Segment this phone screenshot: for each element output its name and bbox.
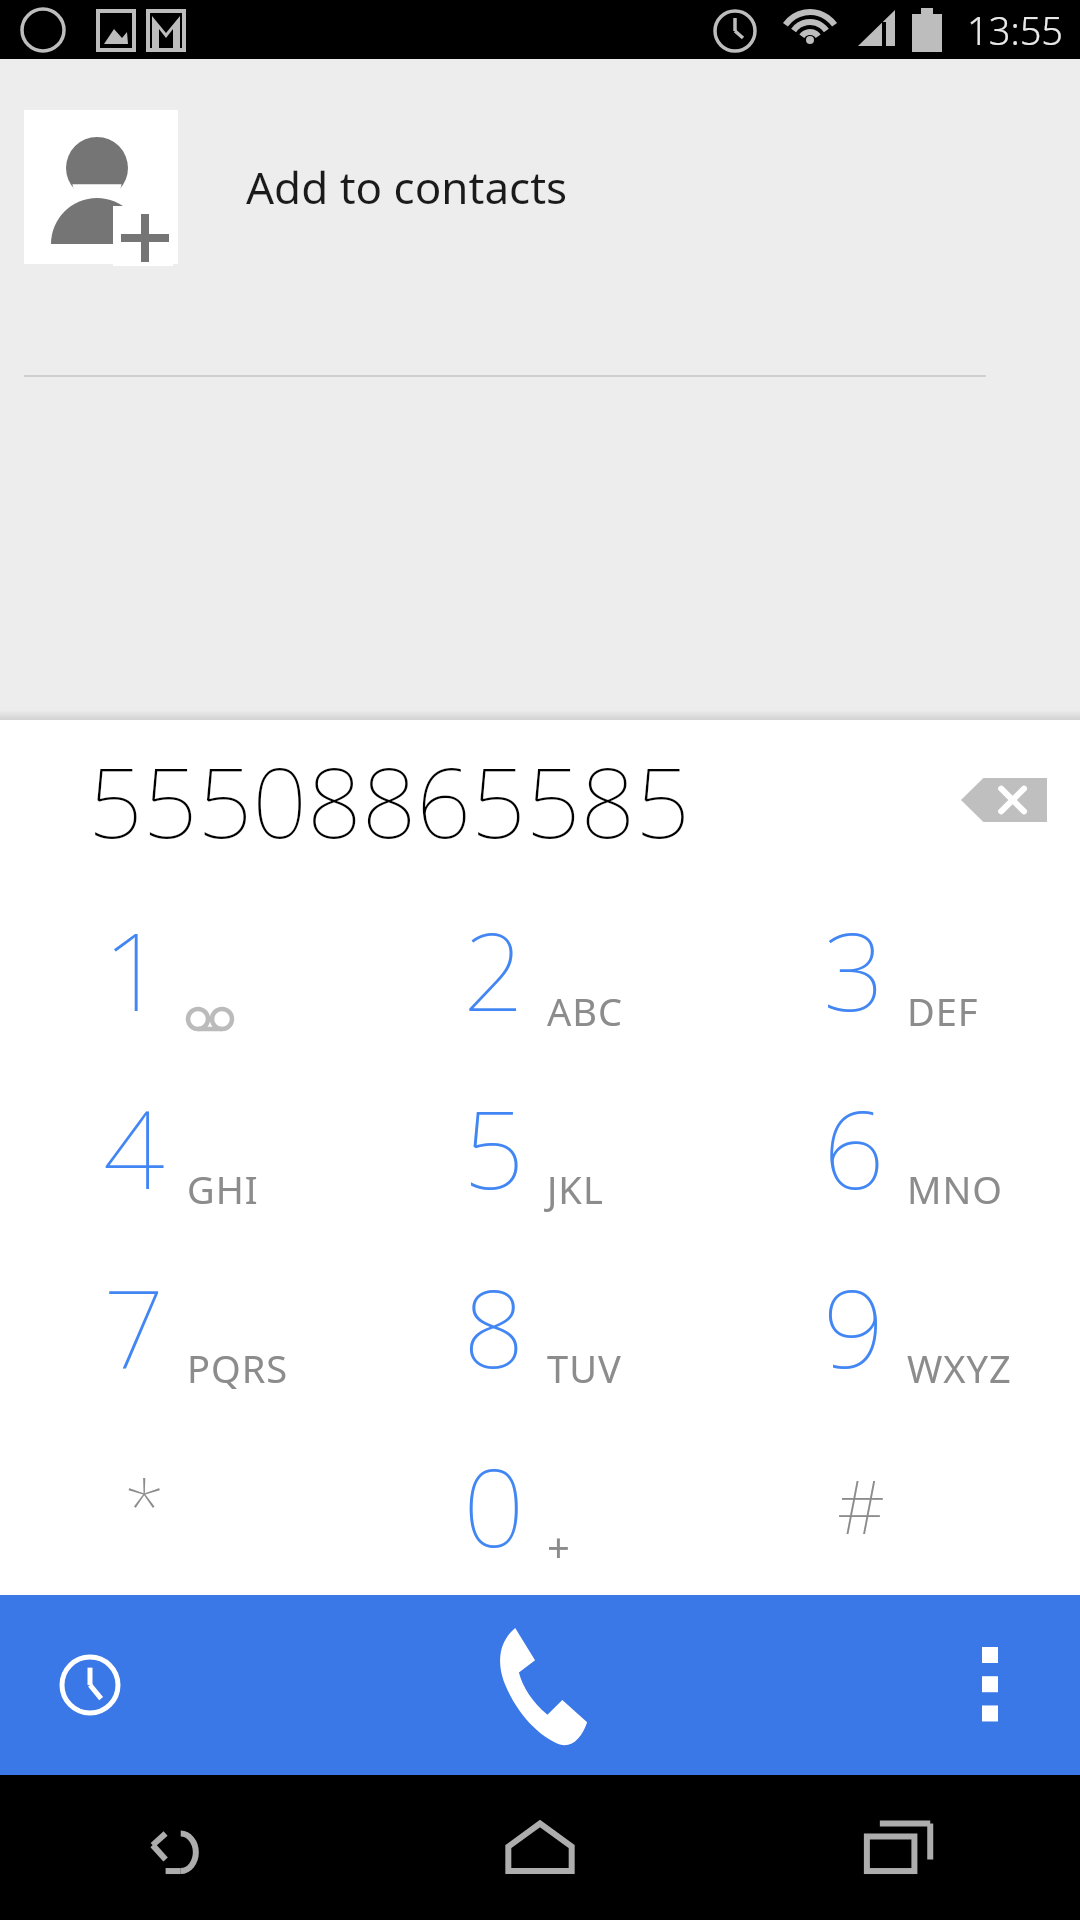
button[interactable]: 5 xyxy=(360,1058,720,1237)
button[interactable]: Call history xyxy=(0,1595,180,1775)
staticText: 5 xyxy=(463,1074,525,1221)
staticText: 55508865585 xyxy=(88,735,690,866)
button[interactable]: Back xyxy=(0,1775,360,1920)
staticText: + xyxy=(547,1519,571,1573)
staticText: TUV xyxy=(547,1342,622,1394)
staticText: # xyxy=(837,1455,885,1556)
button[interactable]: 9 xyxy=(720,1237,1080,1416)
staticText: PQRS xyxy=(187,1342,289,1394)
staticText: WXYZ xyxy=(907,1342,1012,1394)
button[interactable]: Recent apps xyxy=(720,1775,1080,1920)
staticText: 1 xyxy=(103,896,165,1043)
button[interactable]: More options xyxy=(900,1595,1080,1775)
staticText: MNO xyxy=(907,1163,1004,1215)
staticText: 13:55 xyxy=(967,4,1064,56)
staticText: Add to contacts xyxy=(246,157,568,217)
button[interactable]: Call xyxy=(180,1595,900,1775)
staticText: GHI xyxy=(187,1163,259,1215)
button[interactable]: 3 xyxy=(720,880,1080,1058)
button[interactable]: * xyxy=(0,1416,360,1595)
button[interactable]: 2 xyxy=(360,880,720,1058)
staticText: DEF xyxy=(907,985,979,1037)
button[interactable]: # xyxy=(720,1416,1080,1595)
button[interactable]: 8 xyxy=(360,1237,720,1416)
staticText: 4 xyxy=(103,1074,165,1221)
staticText: 8 xyxy=(463,1253,525,1400)
button[interactable]: 7 xyxy=(0,1237,360,1416)
staticText: 6 xyxy=(823,1074,885,1221)
button[interactable]: Home xyxy=(360,1775,720,1920)
staticText: 3 xyxy=(823,896,885,1043)
button[interactable]: 6 xyxy=(720,1058,1080,1237)
staticText: 2 xyxy=(463,896,525,1043)
button[interactable]: Delete xyxy=(950,752,1058,848)
button[interactable]: 1 xyxy=(0,880,360,1058)
staticText: 0 xyxy=(463,1432,525,1579)
button[interactable]: 4 xyxy=(0,1058,360,1237)
button[interactable]: Add to contacts xyxy=(0,59,1080,315)
staticText: ABC xyxy=(547,985,623,1037)
staticText: JKL xyxy=(547,1163,604,1215)
button[interactable]: 0 xyxy=(360,1416,720,1595)
staticText: 9 xyxy=(823,1253,885,1400)
staticText: * xyxy=(124,1455,165,1556)
staticText: 7 xyxy=(103,1253,165,1400)
